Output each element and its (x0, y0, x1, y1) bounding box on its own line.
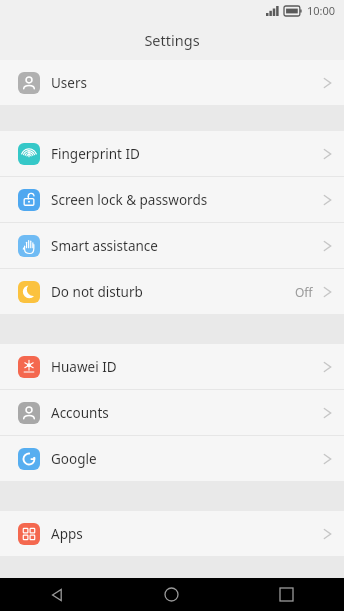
staticText: Users (51, 74, 323, 92)
staticText: Google (51, 450, 323, 468)
button[interactable]: Home (114, 578, 229, 611)
staticText: Fingerprint ID (51, 145, 323, 163)
staticText: Settings (144, 30, 200, 50)
staticText: Screen lock & passwords (51, 191, 323, 209)
button[interactable]: Do not disturb (0, 269, 344, 314)
staticText: Smart assistance (51, 237, 323, 255)
staticText: Off (295, 284, 313, 300)
button[interactable]: Accounts (0, 390, 344, 435)
button[interactable]: Recents (229, 578, 344, 611)
button[interactable]: Back (0, 578, 114, 611)
button[interactable]: Screen lock & passwords (0, 177, 344, 222)
button[interactable]: Fingerprint ID (0, 131, 344, 176)
button[interactable]: Smart assistance (0, 223, 344, 268)
button[interactable]: Users (0, 60, 344, 105)
button[interactable]: Apps (0, 511, 344, 556)
button[interactable]: Huawei ID (0, 344, 344, 389)
staticText: Huawei ID (51, 358, 323, 376)
staticText: Do not disturb (51, 283, 295, 301)
staticText: 10:00 (307, 3, 336, 18)
button[interactable]: Google (0, 436, 344, 481)
staticText: Apps (51, 525, 323, 543)
staticText: Accounts (51, 404, 323, 422)
